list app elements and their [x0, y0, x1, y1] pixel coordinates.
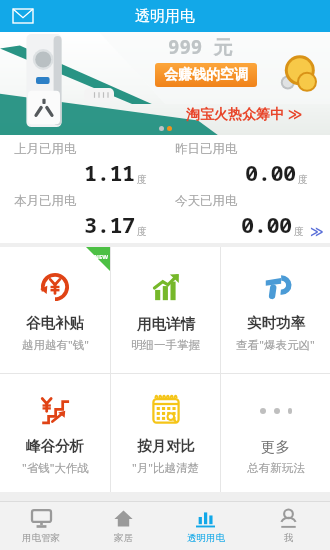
staticText: 淘宝火热众筹中 ≫ — [186, 104, 303, 123]
staticText: 今天已用电 — [175, 193, 238, 209]
staticText: 总有新玩法 — [247, 461, 305, 475]
staticText: 999 元 — [168, 34, 233, 60]
staticText: 更多 — [261, 438, 290, 456]
staticText: 用电管家 — [22, 532, 60, 544]
staticText: "月"比越清楚 — [132, 460, 199, 476]
staticText: 用电详情 — [137, 315, 195, 333]
button[interactable]: 实时功率 — [221, 247, 330, 373]
staticText: 峰谷分析 — [26, 437, 84, 455]
staticText: 度 — [137, 173, 147, 186]
staticText: 会赚钱的空调 — [164, 66, 248, 84]
button[interactable]: 按月对比 — [111, 374, 220, 492]
staticText: 3.17 — [84, 209, 135, 239]
staticText: 0.00 — [241, 209, 292, 239]
staticText: 透明用电 — [135, 7, 195, 26]
staticText: 0.00 — [245, 157, 296, 187]
button[interactable]: 更多 — [221, 374, 330, 492]
button[interactable]: 透明用电 — [164, 502, 247, 550]
button[interactable]: 用电详情 — [111, 247, 220, 373]
staticText: 家居 — [114, 532, 133, 544]
staticText: 本月已用电 — [14, 193, 77, 209]
staticText: 度 — [294, 225, 304, 238]
staticText: 明细一手掌握 — [131, 338, 200, 352]
staticText: 度 — [137, 225, 147, 238]
button[interactable]: Messages — [8, 1, 38, 31]
staticText: 谷电补贴 — [26, 314, 84, 332]
button[interactable]: More details — [308, 224, 326, 239]
button[interactable]: Promotion banner — [0, 32, 330, 135]
staticText: 越用越有"钱" — [22, 337, 89, 353]
staticText: 1.11 — [84, 157, 135, 187]
staticText: 度 — [298, 173, 308, 186]
button[interactable]: 我 — [247, 502, 330, 550]
staticText: "省钱"大作战 — [22, 460, 89, 476]
staticText: NEW — [94, 253, 109, 261]
staticText: ≫ — [310, 224, 324, 239]
button[interactable]: 谷电补贴 — [0, 247, 110, 373]
staticText: 昨日已用电 — [175, 141, 238, 157]
staticText: 我 — [284, 532, 294, 544]
staticText: 按月对比 — [137, 437, 195, 455]
staticText: 实时功率 — [247, 314, 305, 332]
button[interactable]: 用电管家 — [0, 502, 82, 550]
staticText: 透明用电 — [187, 532, 225, 544]
staticText: 上月已用电 — [14, 141, 77, 157]
button[interactable]: 家居 — [82, 502, 164, 550]
button[interactable]: 峰谷分析 — [0, 374, 110, 492]
staticText: 查看"爆表元凶" — [236, 337, 315, 353]
